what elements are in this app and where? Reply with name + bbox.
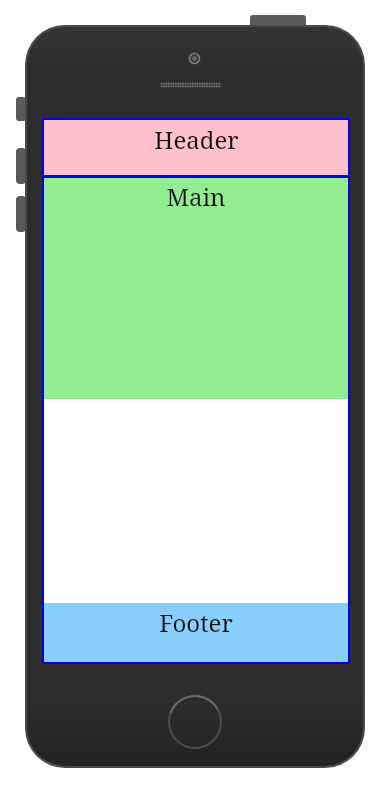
button[interactable]: Main: [44, 178, 348, 399]
button[interactable]: Home: [167, 694, 223, 750]
staticText: Footer: [159, 606, 233, 639]
other: Mute switch: [16, 97, 26, 121]
other: Power: [250, 15, 306, 29]
button[interactable]: Header: [44, 120, 348, 175]
staticText: Header: [154, 123, 239, 156]
button[interactable]: Footer: [44, 603, 348, 662]
staticText: Main: [166, 180, 226, 213]
other: Volume up: [16, 148, 26, 184]
other: Volume down: [16, 196, 26, 232]
